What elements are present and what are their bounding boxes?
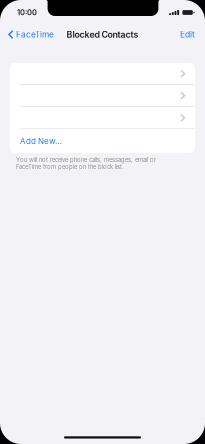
button[interactable]: Edit <box>172 22 205 47</box>
staticText: Blocked Contacts <box>66 29 138 40</box>
staticText: FaceTime <box>16 29 54 39</box>
staticText: Add New… <box>20 136 62 146</box>
button[interactable]: Add New… <box>10 129 195 153</box>
staticText: Edit <box>180 29 195 40</box>
button[interactable]: FaceTime <box>0 22 60 47</box>
staticText: 10:00 <box>17 8 37 17</box>
staticText: You will not receive phone calls, messag… <box>16 156 156 170</box>
